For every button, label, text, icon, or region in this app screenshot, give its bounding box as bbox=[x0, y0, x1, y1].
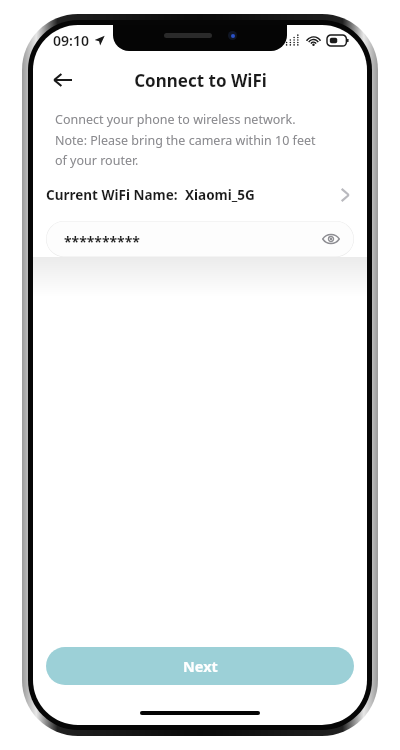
staticText: Next bbox=[183, 656, 218, 676]
staticText: Xiaomi_5G bbox=[185, 186, 255, 204]
button[interactable]: Show password bbox=[318, 226, 344, 252]
staticText: 09:10 bbox=[53, 31, 89, 50]
button[interactable]: ********** bbox=[46, 221, 354, 257]
button[interactable]: Next bbox=[46, 647, 354, 685]
button[interactable]: Current WiFi Name: bbox=[33, 180, 367, 210]
staticText: Current WiFi Name: bbox=[46, 186, 178, 204]
staticText: Connect to WiFi bbox=[134, 69, 267, 92]
staticText: ********** bbox=[64, 232, 140, 251]
button[interactable]: Back bbox=[45, 63, 81, 97]
staticText: Connect your phone to wireless network. … bbox=[55, 111, 316, 168]
